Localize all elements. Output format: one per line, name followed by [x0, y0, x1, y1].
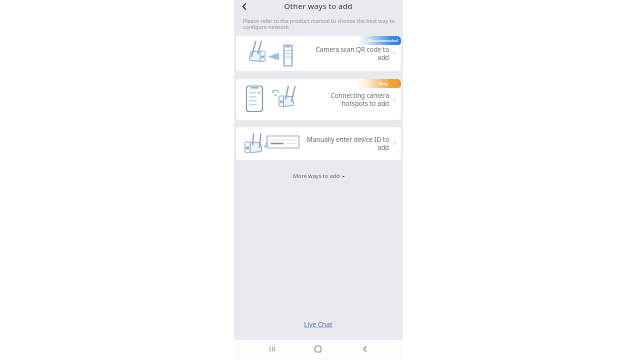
staticText: Please refer to the product manual to ch… [243, 17, 398, 30]
button[interactable]: Back [358, 342, 372, 356]
staticText: Manually enter device ID to add [306, 135, 389, 152]
staticText: Other ways to add [284, 1, 353, 12]
button[interactable]: More ways to add [287, 169, 351, 183]
button[interactable]: Camera scan QR code to add [236, 36, 401, 71]
staticText: More ways to add [293, 172, 340, 180]
button[interactable]: Live Chat [302, 318, 335, 331]
staticText: Connecting camera hotspots to add [330, 91, 389, 108]
button[interactable]: Home [311, 342, 325, 356]
button[interactable]: Manually enter device ID to add [236, 127, 401, 160]
staticText: Camera scan QR code to add [315, 45, 389, 62]
button[interactable]: Connecting camera hotspots to add [236, 79, 401, 120]
button[interactable]: Back [236, 0, 253, 13]
button[interactable]: Recent apps [265, 342, 279, 356]
staticText: Recommended [368, 38, 398, 44]
staticText: Easy [379, 81, 388, 87]
